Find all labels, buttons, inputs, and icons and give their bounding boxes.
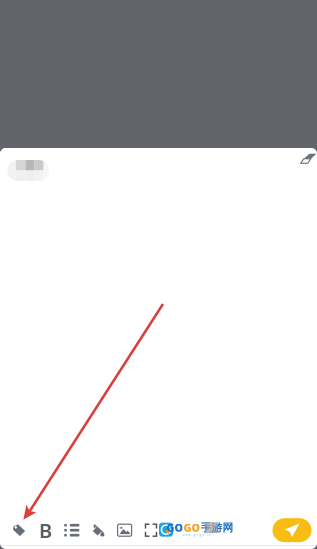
button[interactable]: Send [272,518,311,542]
staticText: w w w . g o g o . c n [182,533,211,536]
button[interactable]: Edit [297,145,317,171]
button[interactable]: Tag [6,517,32,543]
button[interactable]: Scan [138,517,164,543]
button[interactable]: Highlight colour [85,517,111,543]
button[interactable]: Bulleted list [59,517,85,543]
button[interactable]: Bold [32,517,59,543]
staticText: B [39,517,52,543]
button[interactable]: Insert image [111,517,138,543]
staticText: 手游网 [200,521,233,534]
staticText: GO [166,521,183,535]
staticText: GO [183,521,200,535]
